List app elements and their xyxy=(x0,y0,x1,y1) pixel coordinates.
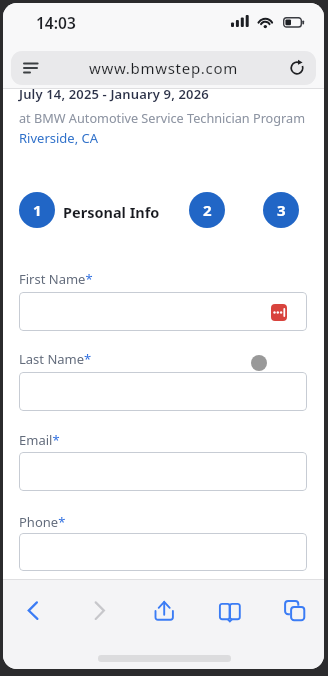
staticText: www.bmwstep.com xyxy=(89,58,238,78)
staticText: 3 xyxy=(277,200,286,220)
staticText: Phone* xyxy=(19,513,66,531)
button[interactable]: 2 xyxy=(189,192,225,228)
staticText: First Name* xyxy=(19,270,93,288)
button[interactable] xyxy=(275,590,319,634)
button[interactable] xyxy=(271,304,287,321)
button[interactable]: Riverside, CA xyxy=(19,129,99,147)
staticText: at BMW Automotive Service Technician Pro… xyxy=(19,109,306,126)
button[interactable]: www.bmwstep.com xyxy=(11,51,316,85)
staticText: 2 xyxy=(203,200,212,220)
button[interactable] xyxy=(19,372,307,411)
button[interactable] xyxy=(12,590,56,634)
staticText: 14:03 xyxy=(36,12,76,33)
staticText: July 14, 2025 - January 9, 2026 xyxy=(19,85,209,103)
button[interactable] xyxy=(19,292,307,331)
staticText: Personal Info xyxy=(63,202,160,222)
button[interactable] xyxy=(209,590,253,634)
staticText: 1 xyxy=(33,200,42,220)
button[interactable]: 1 xyxy=(19,192,55,228)
button[interactable] xyxy=(19,452,307,491)
button[interactable]: 3 xyxy=(263,192,299,228)
button[interactable] xyxy=(142,590,186,634)
button[interactable] xyxy=(78,590,122,634)
staticText: Last Name* xyxy=(19,350,92,368)
staticText: Email* xyxy=(19,431,60,449)
button[interactable] xyxy=(19,533,307,571)
